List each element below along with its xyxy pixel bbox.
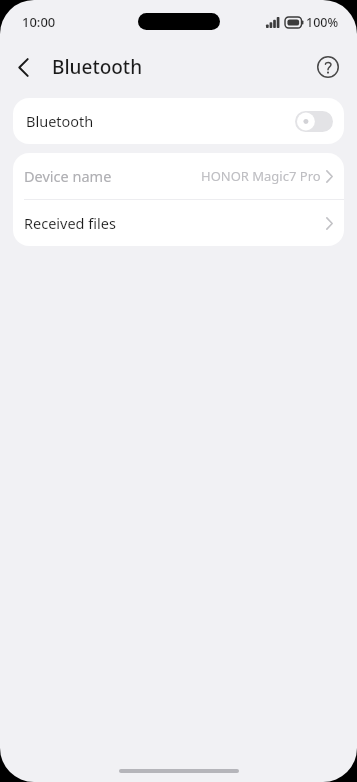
button[interactable]: Help <box>311 50 345 84</box>
staticText: Device name <box>24 166 112 186</box>
staticText: 100% <box>306 14 339 31</box>
staticText: Bluetooth <box>26 111 94 131</box>
staticText: Received files <box>24 213 116 233</box>
staticText: 10:00 <box>22 13 56 31</box>
button[interactable]: Bluetooth toggle <box>295 111 333 132</box>
staticText: HONOR Magic7 Pro <box>201 167 321 185</box>
button[interactable]: Bluetooth <box>13 98 344 144</box>
button[interactable]: Received files <box>13 200 344 246</box>
staticText: Bluetooth <box>52 54 143 80</box>
button[interactable]: Device name <box>13 153 344 199</box>
button[interactable]: Back <box>0 52 37 83</box>
